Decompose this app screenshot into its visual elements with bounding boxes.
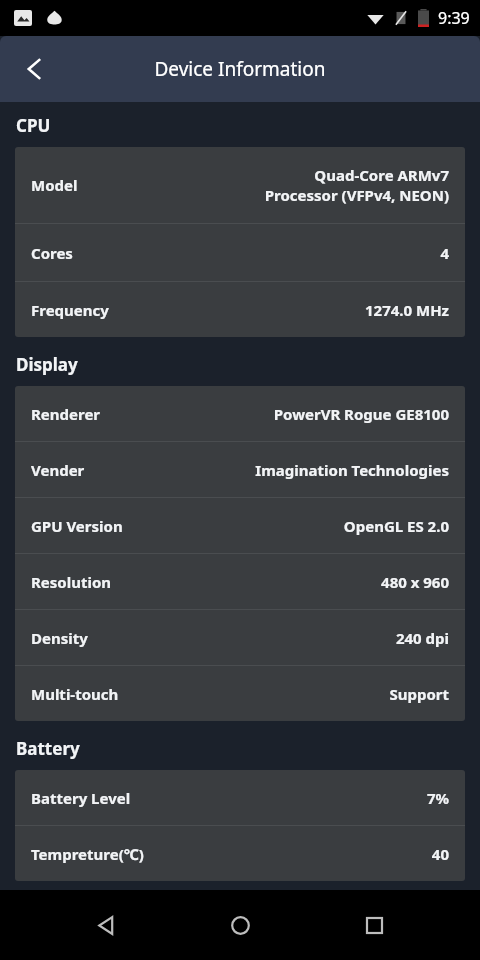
staticText: GPU Version bbox=[31, 516, 123, 536]
staticText: Support bbox=[389, 684, 449, 704]
button[interactable]: Vender bbox=[15, 442, 465, 497]
button[interactable]: Frequency bbox=[15, 282, 465, 337]
staticText: Battery Level bbox=[31, 788, 131, 808]
staticText: 480 x 960 bbox=[381, 572, 449, 592]
staticText: CPU bbox=[16, 114, 480, 137]
staticText: Battery bbox=[16, 737, 480, 760]
staticText: Cores bbox=[31, 243, 73, 263]
staticText: 240 dpi bbox=[395, 628, 449, 648]
staticText: 4 bbox=[440, 243, 449, 263]
button[interactable]: Home bbox=[212, 897, 268, 953]
staticText: Density bbox=[31, 628, 88, 648]
staticText: Quad-Core ARMv7 Processor (VFPv4, NEON) bbox=[264, 165, 449, 205]
button[interactable]: Back bbox=[6, 40, 64, 98]
staticText: Device Information bbox=[154, 56, 326, 82]
staticText: Imagination Technologies bbox=[255, 460, 449, 480]
staticText: Resolution bbox=[31, 572, 112, 592]
button[interactable]: GPU Version bbox=[15, 498, 465, 553]
button[interactable]: Multi-touch bbox=[15, 666, 465, 721]
staticText: Display bbox=[16, 353, 480, 376]
button[interactable]: Cores bbox=[15, 224, 465, 281]
button[interactable]: Resolution bbox=[15, 554, 465, 609]
staticText: Frequency bbox=[31, 300, 109, 320]
staticText: 7% bbox=[426, 788, 449, 808]
staticText: Model bbox=[31, 175, 78, 195]
staticText: Renderer bbox=[31, 404, 101, 424]
staticText: 9:39 bbox=[438, 7, 470, 29]
button[interactable]: Model bbox=[15, 147, 465, 223]
button[interactable]: Density bbox=[15, 610, 465, 665]
button[interactable]: Battery Level bbox=[15, 770, 465, 825]
staticText: PowerVR Rogue GE8100 bbox=[273, 404, 449, 424]
staticText: Vender bbox=[31, 460, 85, 480]
staticText: OpenGL ES 2.0 bbox=[343, 516, 449, 536]
button[interactable]: Renderer bbox=[15, 386, 465, 441]
staticText: Tempreture(℃) bbox=[31, 844, 144, 864]
staticText: 1274.0 MHz bbox=[364, 300, 449, 320]
button[interactable]: Recent apps bbox=[346, 897, 402, 953]
button[interactable]: Tempreture(℃) bbox=[15, 826, 465, 881]
staticText: 40 bbox=[431, 844, 449, 864]
staticText: Multi-touch bbox=[31, 684, 119, 704]
button[interactable]: Back bbox=[78, 897, 134, 953]
